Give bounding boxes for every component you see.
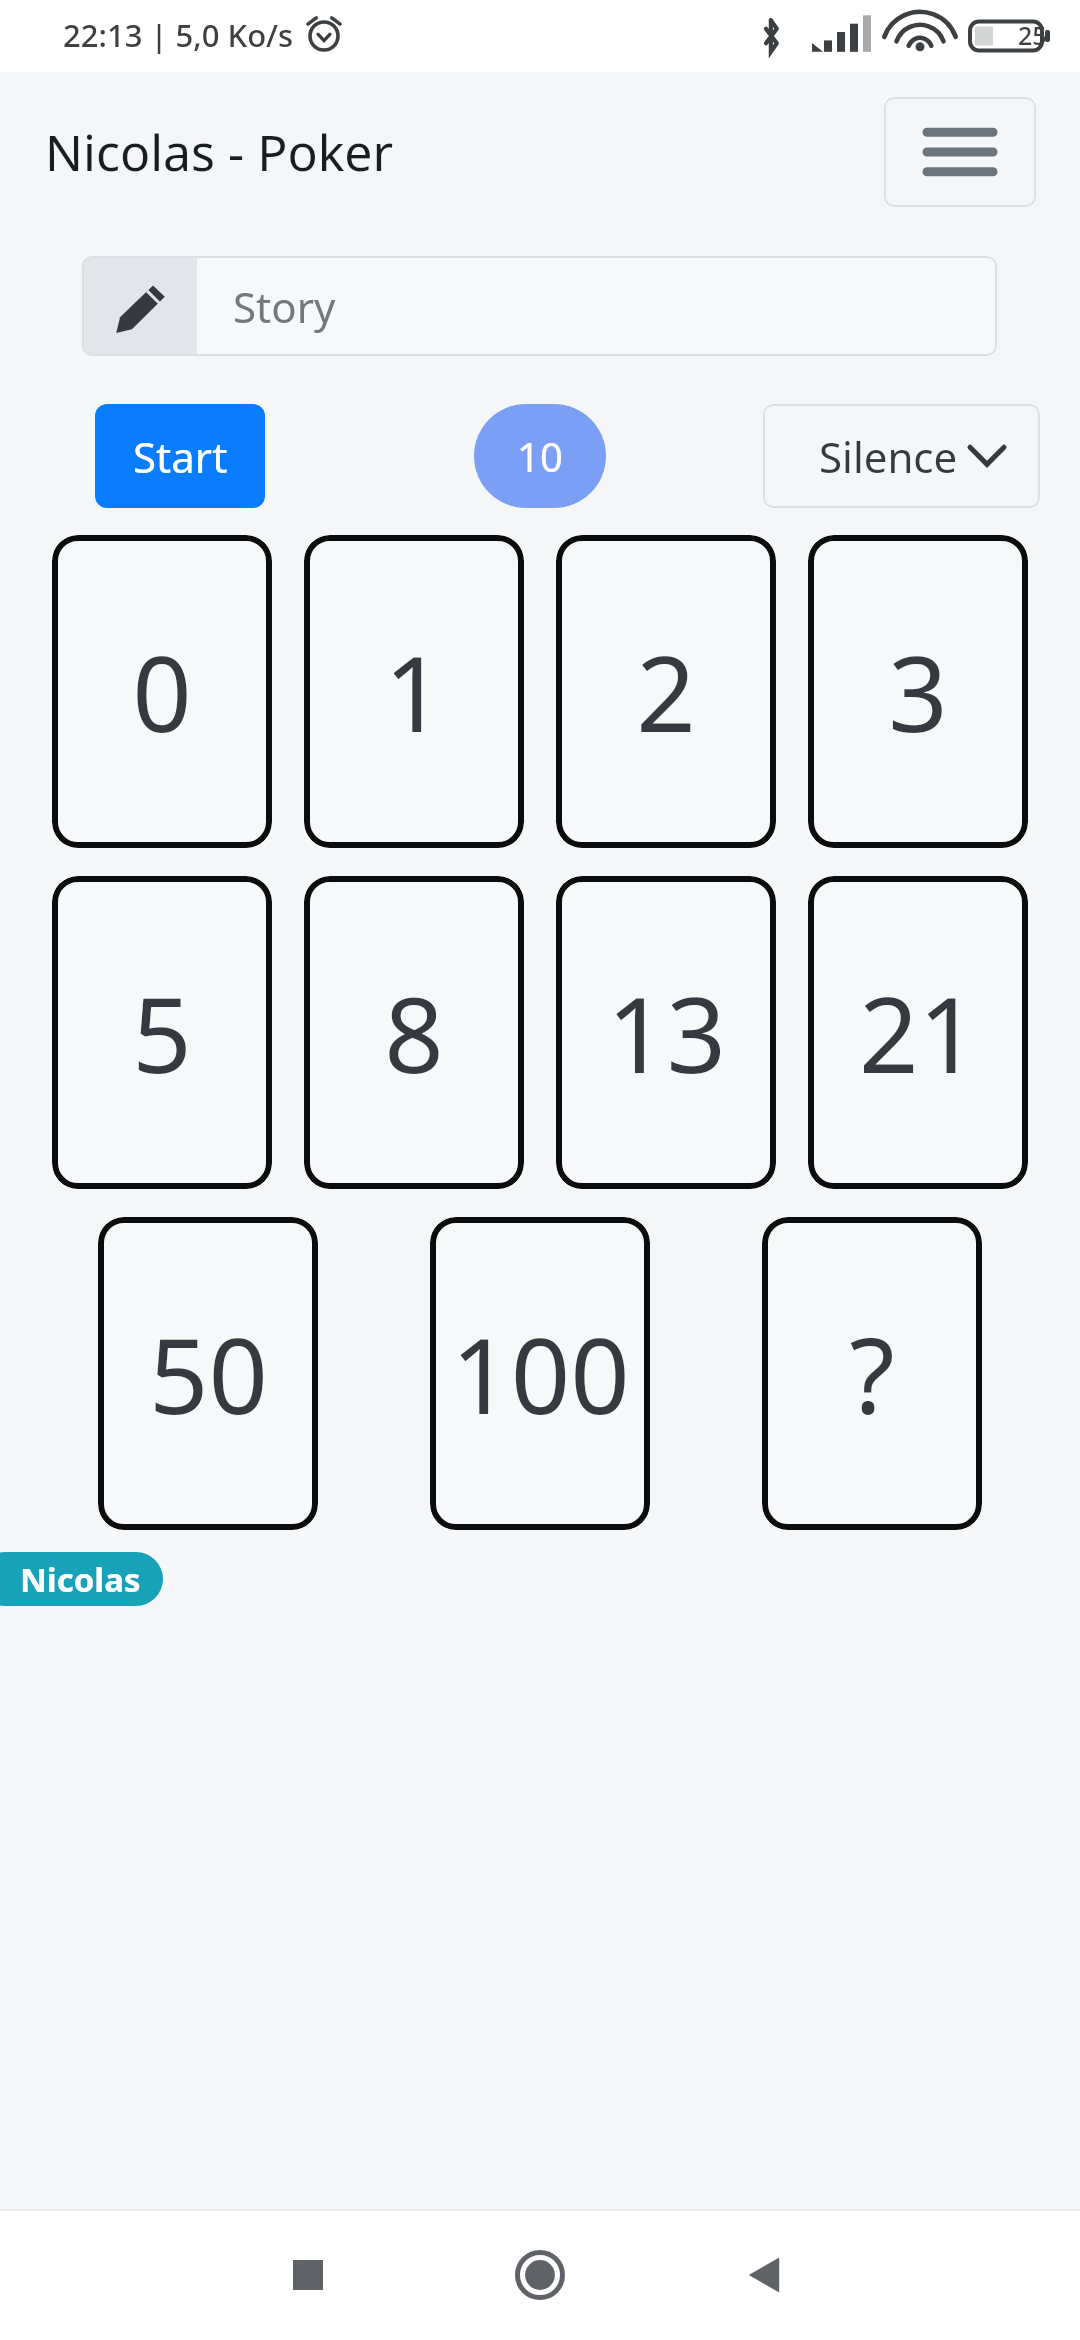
button[interactable]: 3 xyxy=(808,535,1028,848)
button[interactable]: 2 xyxy=(556,535,776,848)
staticText: 3 xyxy=(888,621,948,763)
button[interactable]: 0 xyxy=(52,535,272,848)
button[interactable]: Story xyxy=(82,256,997,356)
button[interactable]: 10 xyxy=(474,404,606,508)
staticText: Silence xyxy=(819,428,970,485)
staticText: 22:13 | 5,0 Ko/s xyxy=(63,14,294,56)
staticText: 2 xyxy=(636,621,696,763)
staticText: Nicolas xyxy=(20,1557,141,1602)
button[interactable]: 13 xyxy=(556,876,776,1189)
staticText: ? xyxy=(849,1303,895,1445)
button[interactable]: Start xyxy=(95,404,265,508)
button[interactable]: 50 xyxy=(98,1217,318,1530)
button[interactable]: Home xyxy=(504,2239,576,2311)
button[interactable]: ? xyxy=(762,1217,982,1530)
staticText: 8 xyxy=(384,962,444,1104)
staticText: Nicolas - Poker xyxy=(45,118,394,186)
button[interactable]: 5 xyxy=(52,876,272,1189)
button[interactable]: 8 xyxy=(304,876,524,1189)
button[interactable]: Back xyxy=(733,2244,795,2306)
button[interactable]: Silence xyxy=(763,404,1040,508)
staticText: 25 xyxy=(1018,18,1047,52)
button[interactable]: Recents xyxy=(277,2244,339,2306)
staticText: 5 xyxy=(132,962,192,1104)
staticText: 100 xyxy=(451,1303,630,1445)
staticText: 10 xyxy=(517,429,563,483)
staticText: 21 xyxy=(859,962,978,1104)
staticText: Start xyxy=(133,428,228,485)
button[interactable]: Nicolas xyxy=(0,1552,163,1606)
button[interactable]: Menu xyxy=(884,97,1036,207)
button[interactable]: 21 xyxy=(808,876,1028,1189)
staticText: 0 xyxy=(132,621,192,763)
staticText: Story xyxy=(233,278,336,335)
button[interactable]: 1 xyxy=(304,535,524,848)
staticText: 1 xyxy=(384,621,444,763)
staticText: 50 xyxy=(149,1303,268,1445)
staticText: 13 xyxy=(607,962,726,1104)
button[interactable]: 100 xyxy=(430,1217,650,1530)
